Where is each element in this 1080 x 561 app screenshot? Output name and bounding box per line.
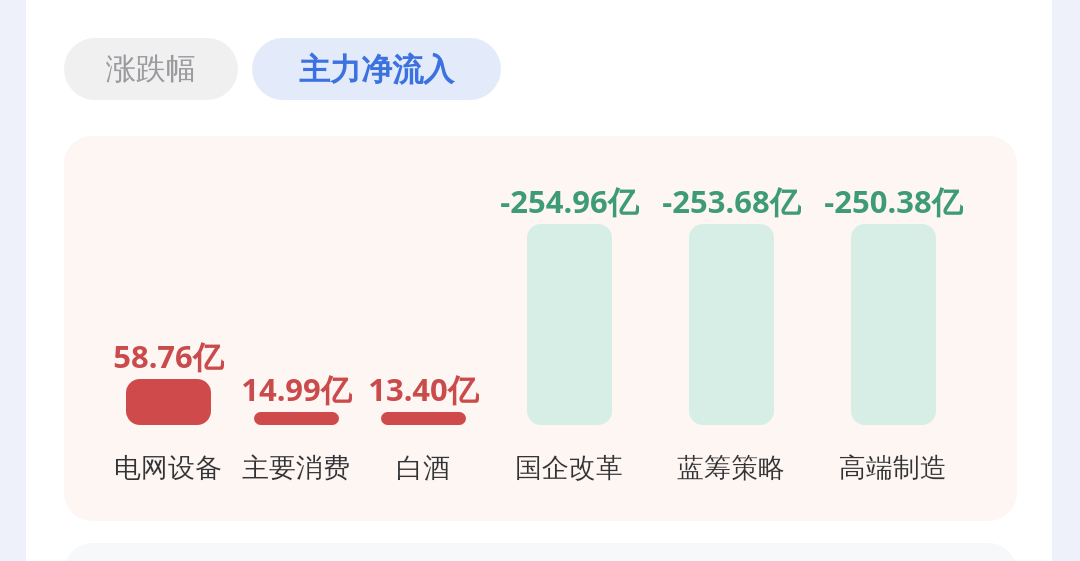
staticText: 涨跌幅 — [106, 50, 196, 88]
button[interactable]: 涨跌幅 — [64, 38, 238, 100]
staticText: 主要消费 — [242, 451, 350, 485]
staticText: 58.76亿 — [113, 335, 224, 375]
staticText: 白酒 — [396, 451, 450, 485]
staticText: 13.40亿 — [368, 368, 479, 408]
staticText: 高端制造 — [839, 451, 947, 485]
staticText: 国企改革 — [515, 451, 623, 485]
staticText: -250.38亿 — [824, 180, 963, 220]
staticText: 14.99亿 — [241, 368, 352, 408]
staticText: 电网设备 — [114, 451, 222, 485]
button[interactable] — [64, 136, 1017, 521]
button[interactable]: 主力净流入 — [252, 38, 501, 100]
staticText: -253.68亿 — [662, 180, 801, 220]
staticText: 蓝筹策略 — [677, 451, 785, 485]
staticText: 主力净流入 — [299, 50, 454, 89]
staticText: -254.96亿 — [500, 180, 639, 220]
